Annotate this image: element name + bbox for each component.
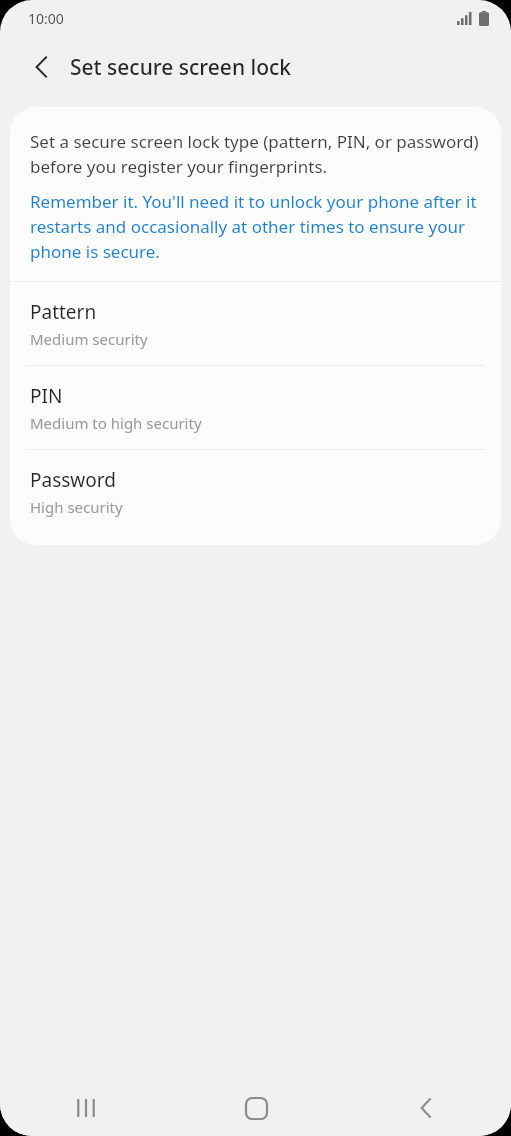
staticText: Medium security [30, 329, 148, 349]
button[interactable]: Back [20, 46, 62, 88]
staticText: Set a secure screen lock type (pattern, … [30, 128, 485, 178]
button[interactable]: PIN [10, 366, 501, 449]
staticText: Set secure screen lock [70, 53, 292, 82]
staticText: 10:00 [28, 9, 64, 28]
staticText: Remember it. You'll need it to unlock yo… [30, 188, 485, 263]
staticText: Password [30, 467, 116, 493]
button[interactable]: Pattern [10, 282, 501, 365]
button[interactable]: Password [10, 450, 501, 533]
button[interactable]: Back [341, 1080, 511, 1136]
button[interactable]: Recents [0, 1080, 171, 1136]
button[interactable]: Home [171, 1080, 341, 1136]
staticText: High security [30, 497, 123, 517]
staticText: PIN [30, 383, 63, 409]
staticText: Pattern [30, 299, 97, 325]
staticText: Medium to high security [30, 413, 202, 433]
